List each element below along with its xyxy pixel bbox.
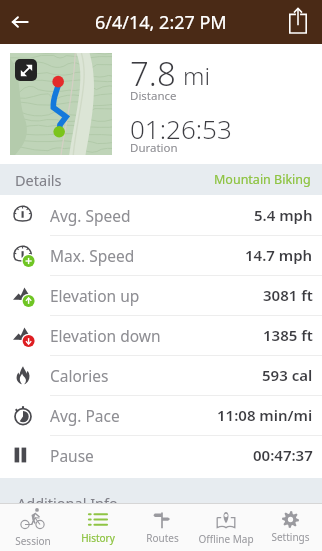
staticText: Avg. Speed [50, 205, 131, 226]
button[interactable]: Calories [0, 355, 322, 395]
staticText: 00:47:37 [253, 445, 313, 465]
staticText: History [81, 531, 115, 545]
staticText: Routes [146, 531, 179, 545]
staticText: Distance [130, 88, 177, 104]
staticText: Mountain Biking [214, 171, 311, 188]
staticText: 7.8 [130, 51, 176, 96]
staticText: Max. Speed [50, 245, 135, 266]
button[interactable]: Avg. Speed [0, 195, 322, 235]
staticText: Additional Info [17, 493, 118, 513]
button[interactable]: Expand map [15, 59, 37, 81]
staticText: Details [15, 170, 62, 190]
staticText: 1385 ft [263, 325, 313, 345]
staticText: Pause [50, 445, 94, 466]
staticText: 593 cal [262, 365, 313, 385]
button[interactable]: Routes [130, 504, 194, 551]
button[interactable]: Elevation up [0, 275, 322, 315]
staticText: mi [183, 59, 210, 92]
button[interactable]: Session [0, 504, 65, 551]
staticText: 5.4 mph [254, 205, 313, 225]
button[interactable]: Back [0, 0, 39, 44]
button[interactable]: Max. Speed [0, 235, 322, 275]
staticText: Avg. Pace [50, 405, 120, 426]
button[interactable]: Open map [10, 53, 112, 155]
staticText: Calories [50, 365, 109, 386]
button[interactable]: Share [273, 0, 322, 44]
staticText: 14.7 mph [245, 245, 313, 265]
staticText: Elevation down [50, 325, 161, 346]
button[interactable]: Elevation down [0, 315, 322, 355]
staticText: 6/4/14, 2:27 PM [95, 10, 227, 35]
staticText: 11:08 min/mi [217, 405, 313, 425]
staticText: Elevation up [50, 285, 140, 306]
staticText: Settings [271, 530, 310, 544]
button[interactable]: Avg. Pace [0, 395, 322, 435]
staticText: Offline Map [198, 532, 254, 546]
staticText: 01:26:53 [130, 111, 232, 146]
button[interactable]: History [65, 504, 130, 551]
staticText: 3081 ft [263, 285, 313, 305]
button[interactable]: Settings [258, 504, 322, 551]
button[interactable]: Offline Map [194, 504, 258, 551]
button[interactable]: Pause [0, 435, 322, 475]
staticText: Duration [130, 140, 178, 156]
staticText: Session [15, 534, 51, 548]
